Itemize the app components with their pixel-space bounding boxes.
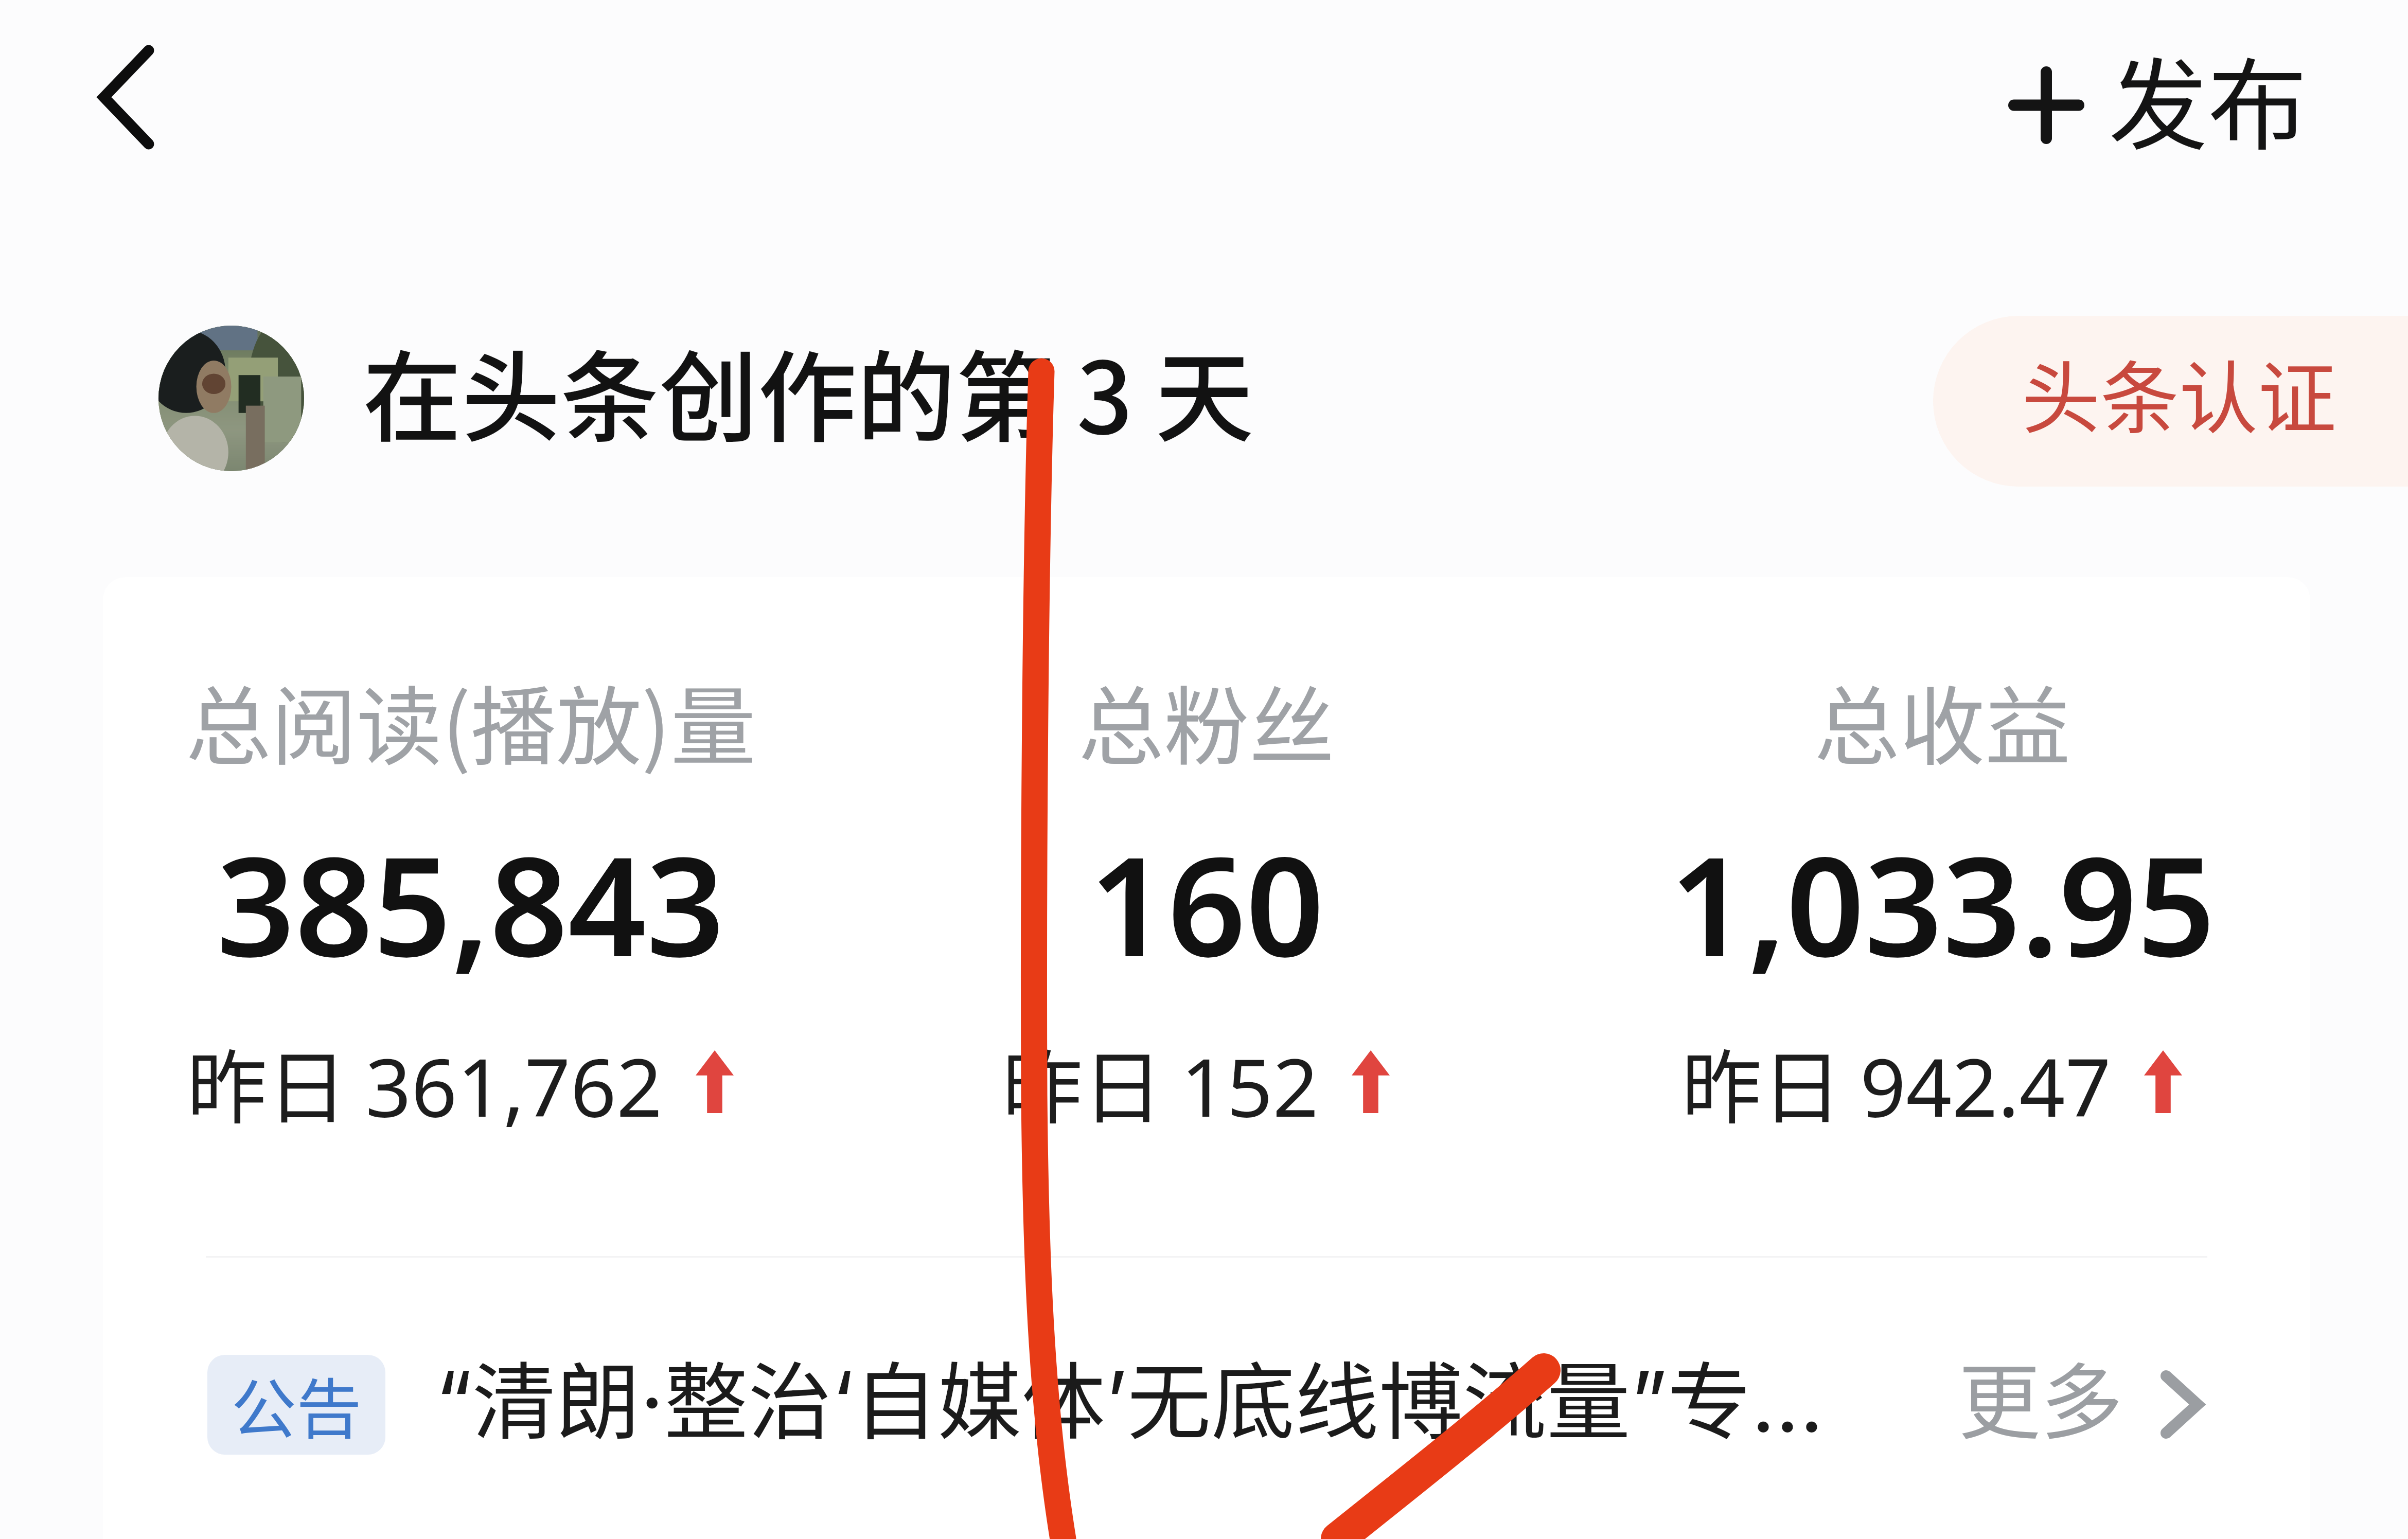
staticText: 发布 (2109, 26, 2308, 170)
staticText: 昨日 361,762 (187, 1024, 663, 1140)
staticText: “清朗·整治‘自媒体’无底线博流量”专… (435, 1335, 1824, 1456)
staticText: 总粉丝 (1078, 658, 1335, 782)
button[interactable]: 头条认证 (1933, 316, 2408, 487)
staticText: 160 (1089, 810, 1324, 996)
staticText: 头条认证 (2022, 336, 2337, 450)
staticText: 385,843 (217, 810, 725, 996)
staticText: 昨日 152 (1002, 1024, 1319, 1140)
staticText: 总阅读(播放)量 (186, 658, 756, 782)
staticText: 在头条创作的第 3 天 (363, 319, 1254, 462)
other: More (2166, 1376, 2198, 1433)
button[interactable]: Back (31, 21, 226, 175)
staticText: 1,033.95 (1670, 810, 2216, 996)
staticText: 更多 (1958, 1336, 2123, 1456)
button[interactable]: Profile photo (158, 326, 304, 471)
staticText: 公告 (231, 1357, 362, 1452)
button[interactable]: 公告 (103, 1292, 2310, 1488)
button[interactable]: 发布 (1966, 21, 2326, 185)
staticText: 昨日 942.47 (1681, 1024, 2111, 1140)
staticText: 总收益 (1814, 658, 2070, 782)
